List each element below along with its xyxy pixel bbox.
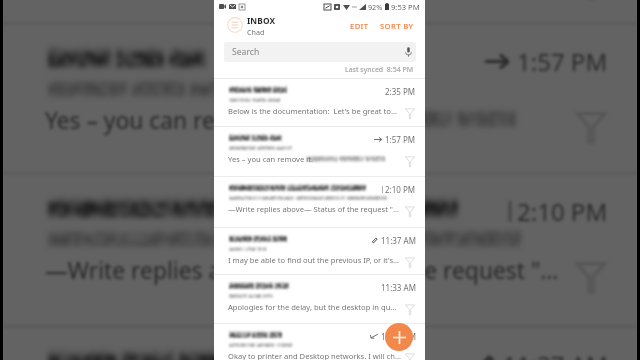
button[interactable]: Yes – you can remove it. — [214, 126, 425, 176]
button[interactable]: —Write replies above— Status of the requ… — [3, 172, 636, 325]
button[interactable]: Compose new message — [385, 323, 413, 351]
staticText: INBOX — [247, 15, 276, 26]
staticText: Below is the documentation: Let's be gre… — [228, 106, 397, 116]
staticText: Apologies for the delay, but the desktop… — [228, 302, 397, 312]
button[interactable]: Okay to printer and Desktop networks. I … — [214, 323, 425, 360]
staticText: —Write replies above— Status of the requ… — [45, 255, 559, 286]
button[interactable]: Below is the documentation: Let's be gre… — [214, 78, 425, 126]
staticText: 9:53 PM — [391, 2, 420, 12]
staticText: SORT BY — [380, 21, 414, 31]
staticText: 1:57 PM — [517, 45, 608, 78]
staticText: 11:37 AM — [503, 348, 608, 360]
button[interactable]: EDIT — [348, 18, 371, 34]
staticText: 2:35 PM — [385, 86, 416, 97]
staticText: —Write replies above— Status of the requ… — [228, 204, 399, 214]
staticText: 2:10 PM — [385, 184, 416, 195]
staticText: 11:33 AM — [381, 282, 416, 293]
staticText: Search — [232, 46, 260, 58]
staticText: Last synced 8:54 PM — [345, 65, 414, 75]
button[interactable]: I may be able to find out the previous I… — [214, 227, 425, 274]
staticText: Yes – you can remove it. — [45, 105, 301, 136]
button[interactable]: Search — [224, 42, 416, 62]
staticText: EDIT — [350, 21, 369, 31]
button[interactable]: SORT BY — [378, 18, 416, 34]
button[interactable]: Below is the documentation: Let's be gre… — [3, 0, 636, 22]
button[interactable]: Yes – you can remove it. — [3, 22, 636, 172]
staticText: I may be able to find out the previous I… — [228, 255, 400, 265]
staticText: 11:27 AM — [381, 331, 416, 342]
staticText: Okay to printer and Desktop networks. I … — [228, 351, 401, 360]
staticText: 1:57 PM — [385, 134, 416, 145]
staticText: 2:10 PM — [517, 195, 608, 228]
button[interactable]: —Write replies above— Status of the requ… — [214, 176, 425, 227]
button[interactable]: I may be able to find out the previous I… — [3, 325, 636, 360]
staticText: 11:37 AM — [381, 235, 416, 246]
staticText: Chad — [247, 27, 265, 37]
button[interactable]: Apologies for the delay, but the desktop… — [214, 274, 425, 323]
staticText: Yes – you can remove it. — [228, 154, 313, 164]
staticText: 92% — [368, 2, 383, 12]
